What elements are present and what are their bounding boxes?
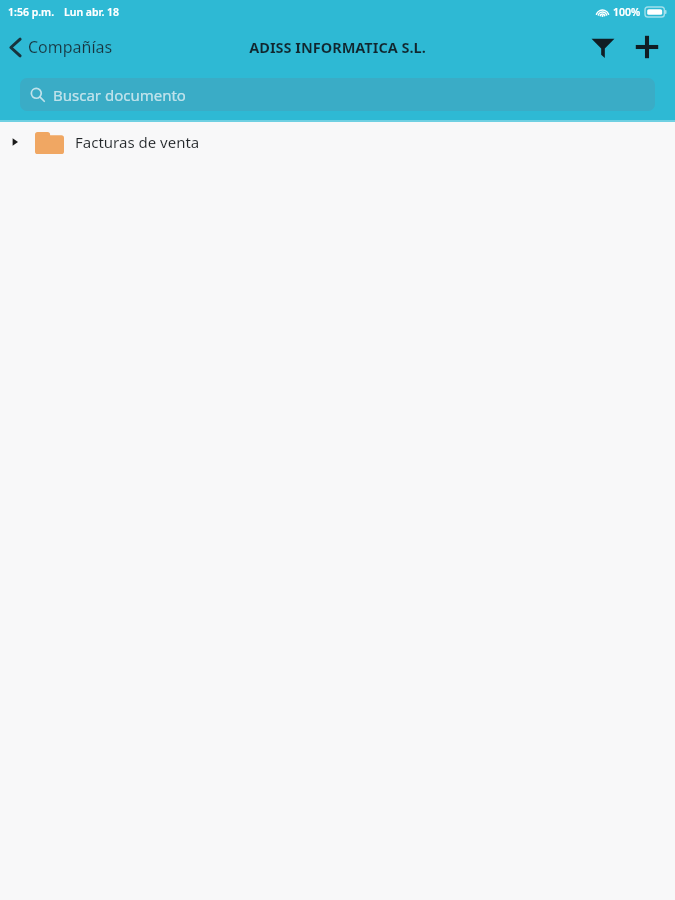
- button[interactable]: Compañías: [0, 30, 125, 64]
- staticText: Buscar documento: [53, 85, 186, 105]
- staticText: Compañías: [28, 36, 113, 58]
- button[interactable]: Add: [625, 25, 669, 69]
- button[interactable]: Facturas de venta: [0, 122, 675, 162]
- button[interactable]: Buscar documento: [20, 78, 655, 111]
- staticText: Facturas de venta: [75, 132, 200, 152]
- button[interactable]: Filter: [581, 25, 625, 69]
- staticText: Lun abr. 18: [64, 5, 120, 19]
- staticText: ADISS INFORMATICA S.L.: [249, 37, 426, 57]
- staticText: 100%: [613, 5, 641, 19]
- staticText: 1:56 p.m.: [8, 5, 55, 19]
